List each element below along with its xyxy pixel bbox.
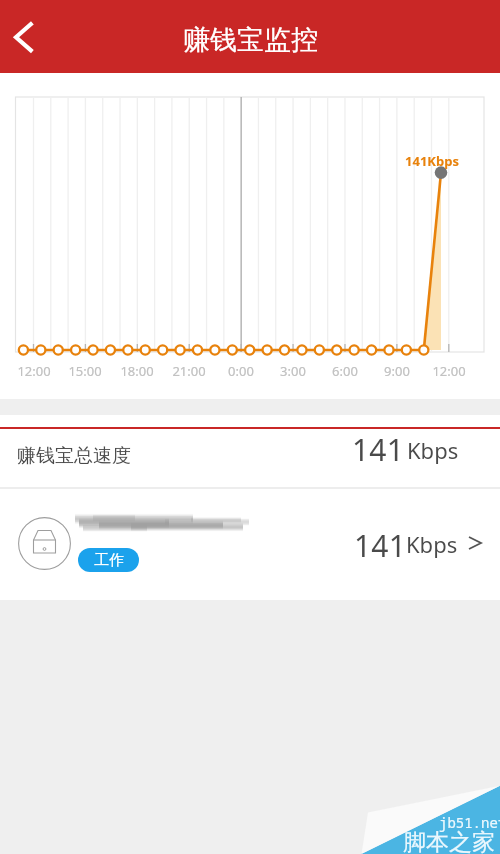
staticText: Kbps [407, 435, 459, 465]
staticText: 141 [354, 525, 407, 566]
other: Details [468, 536, 482, 550]
staticText: 赚钱宝总速度 [17, 444, 131, 468]
staticText: 12:00 [17, 362, 51, 380]
button[interactable]: Back [0, 15, 46, 59]
staticText: 3:00 [280, 362, 306, 380]
staticText: 141 [352, 429, 405, 470]
staticText: 21:00 [172, 362, 206, 380]
staticText: 15:00 [68, 362, 102, 380]
staticText: 6:00 [332, 362, 358, 380]
button[interactable]: 赚钱宝总速度 [0, 429, 500, 487]
staticText: 赚钱宝监控 [183, 23, 318, 57]
staticText: 18:00 [120, 362, 154, 380]
staticText: 工作 [94, 551, 124, 570]
staticText: 脚本之家 [403, 828, 495, 854]
staticText: 0:00 [228, 362, 254, 380]
staticText: 9:00 [384, 362, 410, 380]
staticText: 141Kbps [405, 152, 459, 170]
staticText: Kbps [406, 529, 458, 559]
button[interactable]: 工作 [0, 489, 500, 600]
staticText: jb51.net [439, 813, 500, 832]
staticText: 12:00 [432, 362, 466, 380]
